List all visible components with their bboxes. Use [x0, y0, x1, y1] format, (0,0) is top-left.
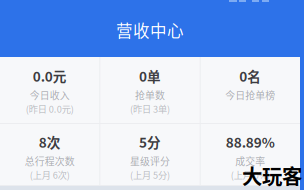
- staticText: (上月 6次): [30, 168, 70, 181]
- staticText: 大玩客: [242, 160, 302, 190]
- button[interactable]: 88.89%: [201, 124, 300, 185]
- staticText: 营收中心: [116, 18, 184, 42]
- staticText: 今日收入: [30, 88, 70, 102]
- staticText: 0.0元: [33, 66, 67, 86]
- staticText: 今日抢单榜: [225, 88, 275, 102]
- staticText: (上月 0%): [231, 168, 270, 181]
- button[interactable]: 0单: [100, 57, 200, 123]
- staticText: (上月 5分): [130, 168, 170, 181]
- staticText: 抢单数: [135, 88, 165, 102]
- staticText: (昨日 0.0元): [26, 102, 74, 115]
- staticText: (昨日 3单): [130, 102, 170, 115]
- staticText: 88.89%: [226, 132, 275, 152]
- staticText: 成交率: [235, 154, 265, 168]
- staticText: 5分: [139, 132, 161, 152]
- staticText: 总行程次数: [25, 154, 75, 168]
- staticText: 0名: [239, 66, 261, 86]
- staticText: 8次: [39, 132, 61, 152]
- staticText: 星级评分: [130, 154, 170, 168]
- button[interactable]: 0.0元: [0, 57, 99, 123]
- staticText: 0单: [139, 66, 161, 86]
- button[interactable]: 0名: [201, 57, 300, 123]
- button[interactable]: 5分: [100, 124, 200, 185]
- button[interactable]: 8次: [0, 124, 99, 185]
